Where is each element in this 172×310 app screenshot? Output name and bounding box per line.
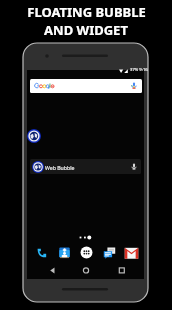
other: Voice search xyxy=(130,162,138,171)
button[interactable]: Voice search xyxy=(30,79,142,93)
button[interactable]: Home xyxy=(79,264,93,278)
staticText: FLOATING BUBBLE xyxy=(27,3,146,21)
button[interactable]: Messages xyxy=(103,246,116,259)
button[interactable]: Phone xyxy=(35,246,48,259)
button[interactable]: Gmail xyxy=(125,246,138,259)
button[interactable]: Contacts xyxy=(58,246,71,259)
staticText: AND WIDGET xyxy=(44,21,128,39)
button[interactable]: Recents xyxy=(115,264,129,278)
button[interactable]: Back xyxy=(45,264,59,278)
staticText: Web Bubble xyxy=(45,164,75,171)
staticText: 37% 9:16 xyxy=(130,67,148,73)
other: Voice search xyxy=(130,81,138,90)
button[interactable]: Apps xyxy=(80,246,93,259)
button[interactable]: Web Bubble xyxy=(30,159,141,174)
button[interactable]: Floating bubble xyxy=(27,129,41,143)
